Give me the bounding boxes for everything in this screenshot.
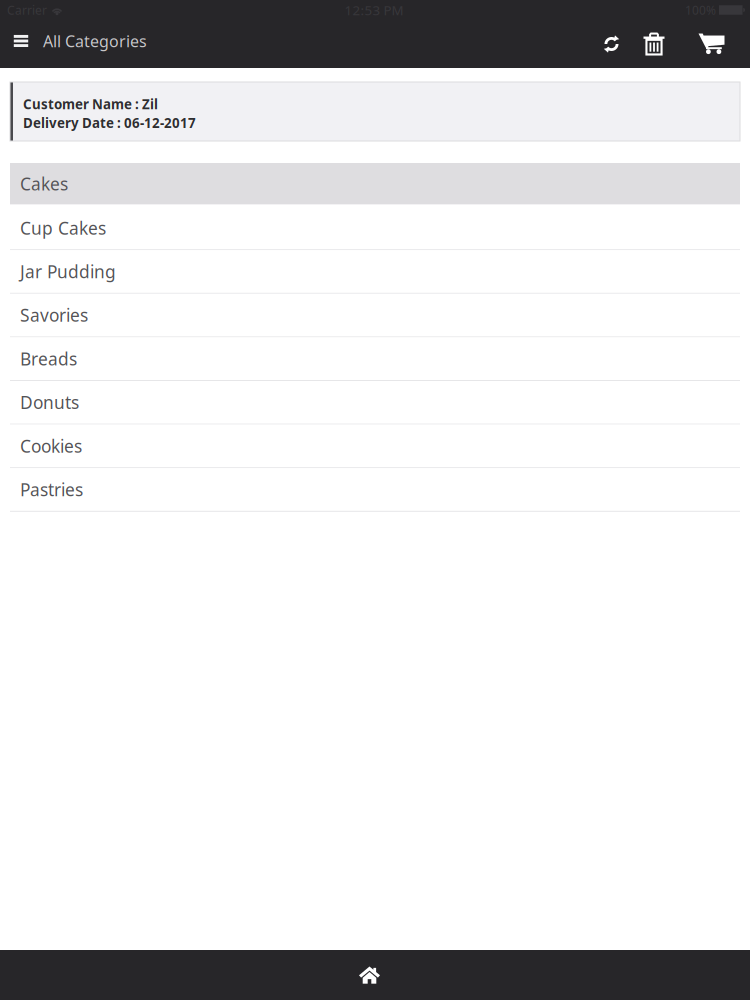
staticText: All Categories — [43, 30, 147, 52]
button[interactable]: Savories — [10, 294, 740, 337]
button[interactable]: Menu — [0, 20, 42, 68]
button[interactable]: Jar Pudding — [10, 250, 740, 294]
staticText: Donuts — [20, 391, 79, 414]
button[interactable]: Pastries — [10, 468, 740, 512]
staticText: Jar Pudding — [20, 260, 116, 283]
staticText: Breads — [20, 347, 77, 370]
staticText: Cup Cakes — [20, 216, 106, 239]
staticText: 12:53 PM — [344, 1, 403, 19]
staticText: 100% — [685, 2, 716, 18]
button[interactable]: Breads — [10, 337, 740, 381]
button[interactable]: Home — [0, 950, 739, 1000]
button[interactable]: Cakes — [10, 163, 740, 207]
button[interactable]: Cart — [675, 20, 747, 68]
button[interactable]: Donuts — [10, 381, 740, 425]
staticText: Cookies — [20, 434, 82, 457]
button[interactable]: Cup Cakes — [10, 207, 740, 250]
staticText: Savories — [20, 304, 88, 327]
button[interactable]: Cookies — [10, 425, 740, 468]
button[interactable]: Delete — [632, 20, 675, 68]
staticText: Cakes — [20, 172, 68, 195]
staticText: Carrier — [7, 2, 47, 18]
staticText: Delivery Date : 06-12-2017 — [23, 114, 196, 132]
staticText: Customer Name : Zil — [23, 95, 158, 113]
staticText: Pastries — [20, 478, 83, 501]
button[interactable]: Refresh — [590, 20, 632, 68]
